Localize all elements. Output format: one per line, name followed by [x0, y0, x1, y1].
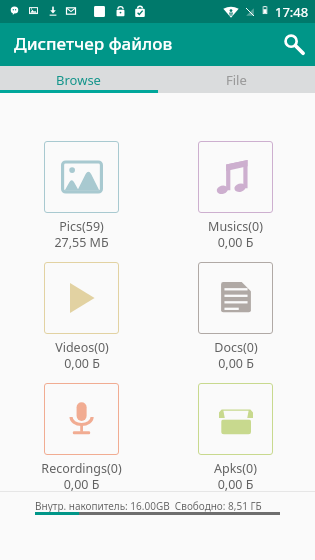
button[interactable]: File — [157, 66, 315, 93]
button[interactable]: Search — [277, 27, 311, 61]
staticText: Apks(0) 0,00 Б — [214, 460, 257, 493]
staticText: Диспетчер файлов — [14, 32, 173, 55]
button[interactable]: Docs(0) 0,00 Б — [176, 262, 295, 372]
button[interactable]: Pics(59) 27,55 МБ — [22, 141, 141, 251]
staticText: Browse — [56, 71, 101, 89]
staticText: Внутр. накопитель: 16.00GB Свободно: 8,5… — [35, 499, 262, 513]
staticText: Videos(0) 0,00 Б — [55, 339, 109, 372]
staticText: Musics(0) 0,00 Б — [208, 218, 263, 251]
button[interactable]: Recordings(0) 0,00 Б — [22, 383, 141, 493]
staticText: Pics(59) 27,55 МБ — [54, 218, 109, 251]
staticText: 17:48 — [275, 3, 309, 21]
staticText: File — [226, 71, 247, 89]
button[interactable]: Apks(0) 0,00 Б — [176, 383, 295, 493]
button[interactable]: Musics(0) 0,00 Б — [176, 141, 295, 251]
staticText: Docs(0) 0,00 Б — [214, 339, 258, 372]
button[interactable]: Videos(0) 0,00 Б — [22, 262, 141, 372]
staticText: Recordings(0) 0,00 Б — [41, 460, 122, 493]
button[interactable]: Browse — [0, 66, 157, 93]
